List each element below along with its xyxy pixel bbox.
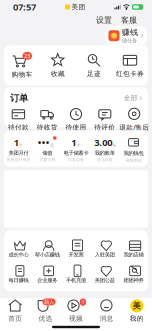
staticText: % xyxy=(112,142,115,148)
button[interactable]: 开发票 xyxy=(62,238,90,258)
button[interactable]: 退款/售后 xyxy=(119,107,148,132)
staticText: 个 xyxy=(19,143,23,148)
button[interactable]: 待评价 xyxy=(90,107,119,131)
staticText: 消息 xyxy=(99,314,113,323)
button[interactable]: 足迹 xyxy=(76,53,112,78)
button[interactable]: 待使用 xyxy=(62,107,90,131)
button[interactable]: 新人 xyxy=(30,298,61,323)
button[interactable]: 设置 xyxy=(94,13,114,27)
staticText: 23 xyxy=(24,52,30,59)
staticText: 做任务 xyxy=(122,37,137,44)
button[interactable]: 消息 xyxy=(91,298,122,323)
staticText: 待评价 xyxy=(94,123,115,131)
button[interactable]: 待付款 xyxy=(4,107,33,131)
staticText: 首页 xyxy=(8,314,22,323)
staticText: 先用后付免息 xyxy=(6,157,30,162)
staticText: 每日赚钱 xyxy=(8,277,28,283)
button[interactable]: 赚钱 xyxy=(105,26,147,45)
staticText: 我的 xyxy=(130,314,144,323)
staticText: 1 xyxy=(71,136,76,149)
staticText: 企业服务 xyxy=(37,277,57,283)
staticText: 美 xyxy=(133,301,141,311)
staticText: ••• xyxy=(38,136,50,149)
staticText: 1 xyxy=(81,299,84,306)
staticText: 开发票 xyxy=(68,251,83,258)
staticText: 电子储蓄卡 xyxy=(63,150,88,156)
staticText: 全部 xyxy=(124,94,138,102)
staticText: 灵活存取 xyxy=(97,157,113,162)
button[interactable]: 美 xyxy=(122,298,152,323)
staticText: 我的账单 xyxy=(95,150,115,156)
staticText: 1 xyxy=(14,136,19,149)
staticText: 收藏 xyxy=(51,70,65,78)
button[interactable]: 入驻美团 xyxy=(90,238,119,258)
staticText: 个 xyxy=(77,143,81,148)
staticText: 美团月付 xyxy=(8,150,28,156)
staticText: 待使用 xyxy=(65,123,86,131)
staticText: 3.00 xyxy=(94,136,112,149)
staticText: 退款/售后 xyxy=(119,123,149,132)
staticText: 购物车 xyxy=(11,70,32,79)
button[interactable]: 团团神券 xyxy=(119,264,148,283)
staticText: 元 xyxy=(50,143,54,148)
button[interactable]: 手机充值 xyxy=(62,264,90,283)
button[interactable]: 首页 xyxy=(0,298,30,323)
button[interactable]: 23 xyxy=(4,52,40,79)
staticText: 设置 xyxy=(96,15,112,25)
staticText: 客服 xyxy=(121,15,137,25)
staticText: 我的店铺 xyxy=(124,251,144,258)
staticText: 帮小店赚钱 xyxy=(35,251,60,258)
button[interactable]: 收藏 xyxy=(40,53,76,78)
staticText: 优选 xyxy=(39,314,53,323)
staticText: 美团公益 xyxy=(95,277,115,283)
staticText: 赚钱 xyxy=(122,27,138,37)
staticText: 入驻美团 xyxy=(95,251,115,258)
button[interactable]: 全部 xyxy=(124,94,142,102)
button[interactable]: 1 xyxy=(61,298,91,323)
staticText: 07:57 xyxy=(13,1,36,13)
button[interactable]: ••• xyxy=(33,136,62,162)
staticText: 红包卡券 xyxy=(116,70,144,78)
button[interactable]: 每日赚钱 xyxy=(4,264,33,283)
staticText: 美团 xyxy=(71,3,85,11)
staticText: 待收货 xyxy=(37,123,58,131)
staticText: 省钱管钱 xyxy=(126,158,142,163)
staticText: 待付款 xyxy=(8,123,29,131)
staticText: 我的钱包 xyxy=(124,150,144,156)
staticText: 手机充值 xyxy=(66,277,86,283)
staticText: 大额可用 xyxy=(39,157,55,162)
button[interactable]: 待收货 xyxy=(33,107,62,131)
button[interactable]: 美团公益 xyxy=(90,264,119,283)
button[interactable]: 1 xyxy=(4,136,33,162)
staticText: 团团神券 xyxy=(124,277,144,283)
button[interactable]: 客服 xyxy=(119,13,139,27)
staticText: 日常必备 xyxy=(68,157,84,162)
staticText: 储值 xyxy=(42,150,52,156)
staticText: 成长中心 xyxy=(8,251,28,258)
button[interactable]: 企业服务 xyxy=(33,264,62,283)
button[interactable]: 1 xyxy=(62,136,90,162)
staticText: 订单 xyxy=(10,92,28,104)
button[interactable]: 红包卡券 xyxy=(112,53,148,78)
button[interactable]: 我的钱包 xyxy=(119,135,148,163)
button[interactable]: 帮小店赚钱 xyxy=(33,238,62,258)
staticText: 新人 xyxy=(44,299,54,305)
button[interactable]: 成长中心 xyxy=(4,238,33,258)
staticText: 足迹 xyxy=(87,70,101,78)
staticText: 视频 xyxy=(69,314,83,323)
button[interactable]: 3.00 xyxy=(90,136,119,162)
button[interactable]: 我的店铺 xyxy=(119,238,148,258)
